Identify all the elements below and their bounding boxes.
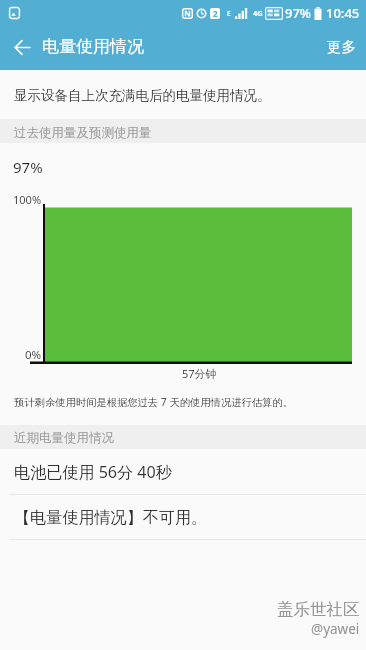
staticText: 4G bbox=[253, 8, 263, 18]
staticText: 近期电量使用情况 bbox=[14, 430, 114, 446]
staticText: E bbox=[227, 9, 231, 18]
staticText: 过去使用量及预测使用量 bbox=[14, 125, 152, 141]
staticText: 【电量使用情况】不可用。 bbox=[14, 507, 208, 527]
staticText: 显示设备自上次充满电后的电量使用情况。 bbox=[14, 87, 271, 104]
staticText: 电量使用情况 bbox=[42, 36, 144, 57]
staticText: 电池已使用 56分 40秒 bbox=[14, 461, 172, 483]
button[interactable]: 更多 bbox=[313, 26, 366, 69]
staticText: 57分钟 bbox=[182, 366, 217, 381]
staticText: 97% bbox=[13, 157, 43, 177]
staticText: 2 bbox=[213, 8, 218, 19]
staticText: 97% bbox=[285, 4, 311, 22]
button[interactable]: 电池已使用 56分 40秒 bbox=[0, 449, 366, 494]
staticText: 预计剩余使用时间是根据您过去 7 天的使用情况进行估算的。 bbox=[14, 395, 293, 409]
staticText: 盖乐世社区 bbox=[277, 599, 360, 620]
staticText: 10:45 bbox=[326, 4, 360, 22]
staticText: @yawei bbox=[311, 620, 360, 638]
button[interactable]: Back bbox=[0, 27, 42, 69]
staticText: 0% bbox=[25, 347, 42, 363]
staticText: 100% bbox=[13, 192, 42, 207]
button[interactable]: 【电量使用情况】不可用。 bbox=[0, 495, 366, 539]
staticText: 更多 bbox=[327, 38, 356, 56]
